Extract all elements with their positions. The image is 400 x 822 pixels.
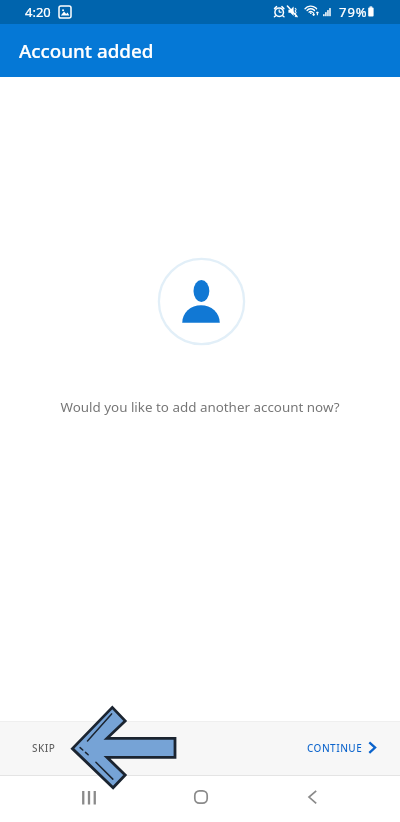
staticText: 79% [339,3,368,21]
button[interactable]: Recent apps [0,775,133,822]
button[interactable]: Home [133,775,243,822]
button[interactable]: Back [243,775,400,822]
staticText: Account added [19,38,154,64]
staticText: Would you like to add another account no… [0,398,400,416]
staticText: 4:20 [25,3,51,21]
staticText: SKIP [32,741,56,755]
button[interactable]: CONTINUE [296,731,391,765]
button[interactable]: SKIP [16,731,72,765]
staticText: CONTINUE [307,741,363,755]
